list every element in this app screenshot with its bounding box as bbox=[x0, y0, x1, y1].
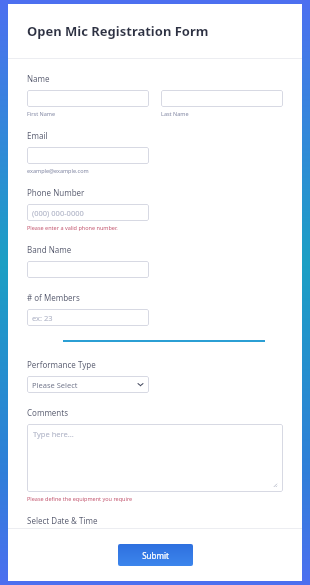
staticText: First Name bbox=[27, 110, 56, 117]
other: Open performance type list bbox=[137, 381, 144, 388]
button[interactable] bbox=[27, 90, 149, 107]
staticText: (000) 000-0000 bbox=[32, 208, 84, 218]
button[interactable]: Type here... bbox=[27, 424, 283, 492]
staticText: Last Name bbox=[161, 110, 189, 117]
button[interactable]: ex: 23 bbox=[27, 309, 149, 326]
staticText: Comments bbox=[27, 407, 69, 418]
staticText: Name bbox=[27, 73, 50, 84]
staticText: Please define the equipment you require bbox=[27, 495, 133, 502]
staticText: Email bbox=[27, 130, 48, 141]
staticText: Phone Number bbox=[27, 187, 85, 198]
staticText: Please Select bbox=[32, 380, 78, 390]
button[interactable] bbox=[27, 261, 149, 278]
button[interactable]: Please Select bbox=[27, 376, 149, 393]
staticText: ex: 23 bbox=[32, 313, 53, 323]
staticText: Please enter a valid phone number. bbox=[27, 224, 118, 231]
button[interactable] bbox=[27, 147, 149, 164]
staticText: Type here... bbox=[33, 429, 74, 439]
staticText: Submit bbox=[142, 550, 169, 561]
staticText: Open Mic Registration Form bbox=[27, 22, 209, 40]
staticText: Select Date & Time bbox=[27, 515, 98, 526]
staticText: example@example.com bbox=[27, 167, 89, 174]
button[interactable] bbox=[161, 90, 283, 107]
button[interactable]: (000) 000-0000 bbox=[27, 204, 149, 221]
staticText: Band Name bbox=[27, 244, 72, 255]
button[interactable]: Submit bbox=[118, 544, 193, 566]
staticText: Performance Type bbox=[27, 359, 96, 370]
staticText: # of Members bbox=[27, 292, 80, 303]
